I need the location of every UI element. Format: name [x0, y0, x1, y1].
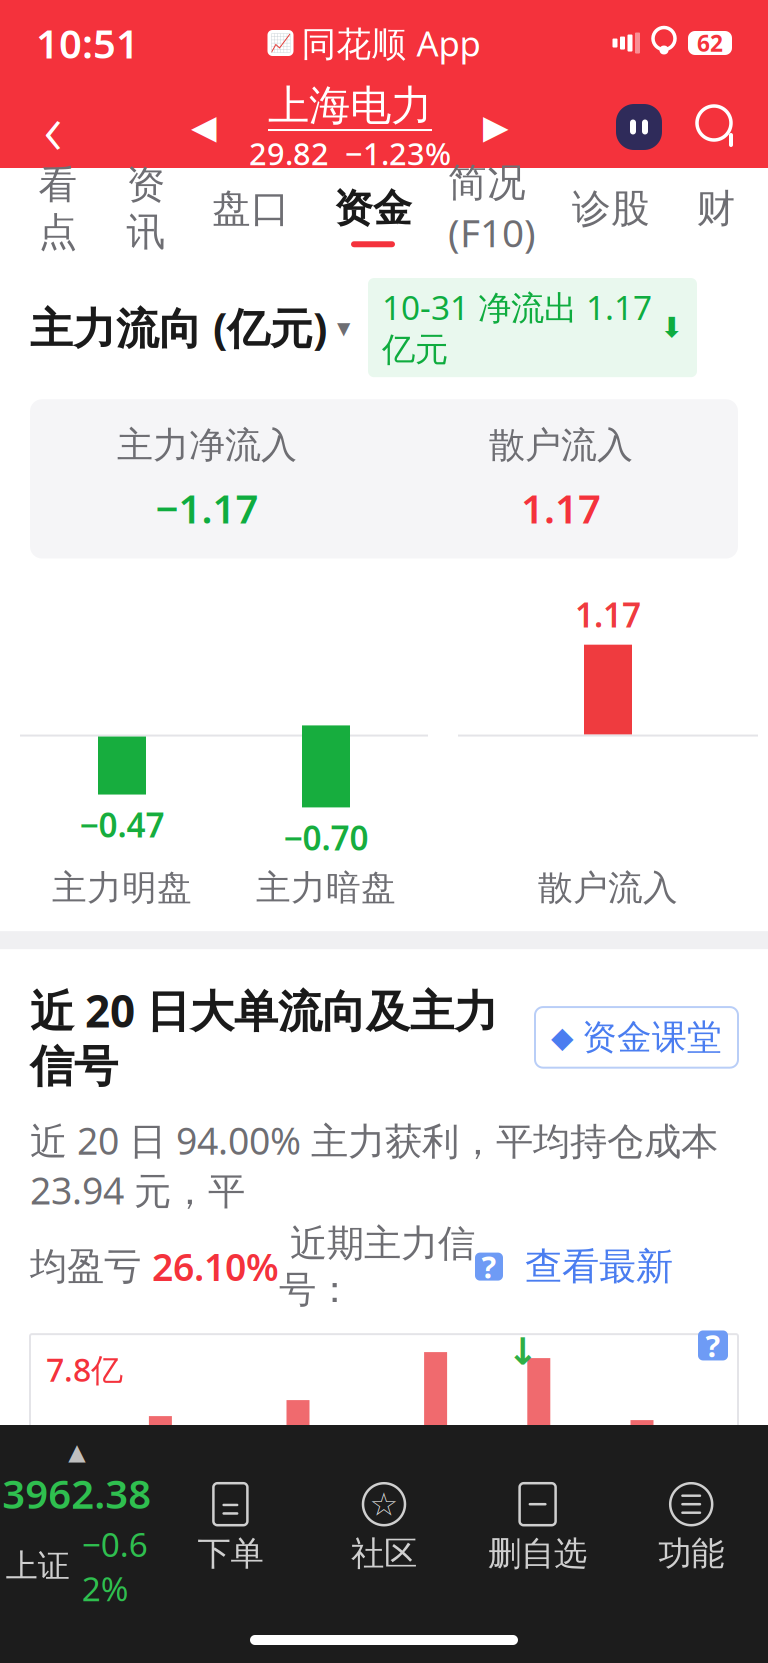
staticText: ‹	[43, 79, 62, 175]
button[interactable]: 诊股	[550, 168, 672, 264]
staticText: 1.17	[521, 481, 601, 534]
staticText: ◆	[551, 1021, 574, 1054]
button[interactable]: 下单	[154, 1475, 307, 1574]
staticText: 3962.38	[2, 1467, 151, 1520]
button[interactable]: 说明	[475, 1253, 503, 1281]
staticText: 主力暗盘	[256, 866, 396, 909]
staticText: 盘口	[212, 185, 290, 232]
staticText: −0.47	[79, 802, 164, 847]
staticText: 📈	[269, 33, 291, 53]
button[interactable]: 盘口	[190, 168, 312, 264]
staticText: 近 20 日 94.00% 主力获利，平均持仓成本 23.94 元，平	[30, 1116, 718, 1215]
staticText: 财	[696, 185, 735, 232]
staticText: ◀	[191, 108, 217, 146]
button[interactable]: ▲	[0, 1439, 154, 1610]
staticText: 资讯	[126, 161, 165, 256]
staticText: ?	[705, 1325, 720, 1366]
staticText: 近期主力信号：	[279, 1221, 475, 1312]
staticText: 删自选	[488, 1533, 587, 1574]
staticText: 1.17	[575, 592, 641, 637]
staticText: 上证	[6, 1546, 70, 1586]
staticText: ?	[481, 1246, 496, 1287]
staticText: 均盈亏	[30, 1244, 152, 1290]
staticText: 上海电力	[268, 80, 432, 131]
staticText: 主力流向 (亿元)	[30, 299, 327, 356]
button[interactable]: 上一只	[173, 87, 235, 167]
staticText: 62	[697, 28, 723, 58]
staticText: 26.10%	[152, 1242, 279, 1291]
staticText: 10-31 净流出 1.17 亿元	[382, 285, 652, 370]
staticText: 7.8亿	[46, 1348, 123, 1391]
button[interactable]: 资讯	[102, 168, 190, 264]
staticText: 简况(F10)	[448, 159, 536, 258]
button[interactable]: ◆	[535, 1007, 738, 1068]
staticText: 同花顺 App	[301, 20, 480, 66]
staticText: ▾	[337, 312, 350, 343]
staticText: 主力明盘	[52, 866, 192, 909]
staticText: 散户流入	[538, 866, 678, 909]
staticText: 功能	[658, 1533, 724, 1574]
staticText: 近 20 日大单流向及主力信号	[30, 981, 498, 1094]
button[interactable]: 返回	[8, 87, 98, 167]
button[interactable]: 看点	[14, 168, 102, 264]
button[interactable]: 删自选	[461, 1475, 614, 1574]
staticText: 散户流入	[489, 423, 633, 467]
staticText: −0.62%	[82, 1522, 148, 1610]
staticText: ☆	[369, 1486, 398, 1522]
button[interactable]: 财	[672, 168, 760, 264]
staticText: ▶	[483, 108, 509, 146]
button[interactable]: 主力流向 (亿元)	[30, 299, 350, 356]
staticText: −0.70	[283, 815, 368, 860]
staticText: 资金课堂	[582, 1016, 722, 1059]
button[interactable]: ☆	[307, 1475, 461, 1574]
button[interactable]: 搜索	[676, 87, 760, 167]
button[interactable]: 智能助手	[602, 87, 676, 167]
button[interactable]: 简况(F10)	[434, 168, 550, 264]
staticText: 查看最新	[503, 1244, 673, 1290]
button[interactable]: 资金	[312, 168, 434, 264]
button[interactable]: 下一只	[465, 87, 527, 167]
staticText: 资金	[334, 185, 412, 232]
staticText: 社区	[351, 1533, 417, 1574]
button[interactable]: 功能	[614, 1475, 768, 1574]
staticText: ↓	[507, 1330, 538, 1373]
staticText: −1.17	[155, 481, 258, 534]
staticText: 主力净流入	[117, 423, 297, 467]
staticText: 29.82 −1.23%	[249, 133, 451, 174]
staticText: 看点	[38, 161, 77, 256]
staticText: ▲	[68, 1439, 85, 1465]
staticText: ⬇	[660, 312, 683, 343]
staticText: 10:51	[36, 16, 139, 69]
staticText: 诊股	[572, 185, 650, 232]
button[interactable]: 查看最新	[503, 1244, 673, 1290]
staticText: 下单	[197, 1533, 263, 1574]
